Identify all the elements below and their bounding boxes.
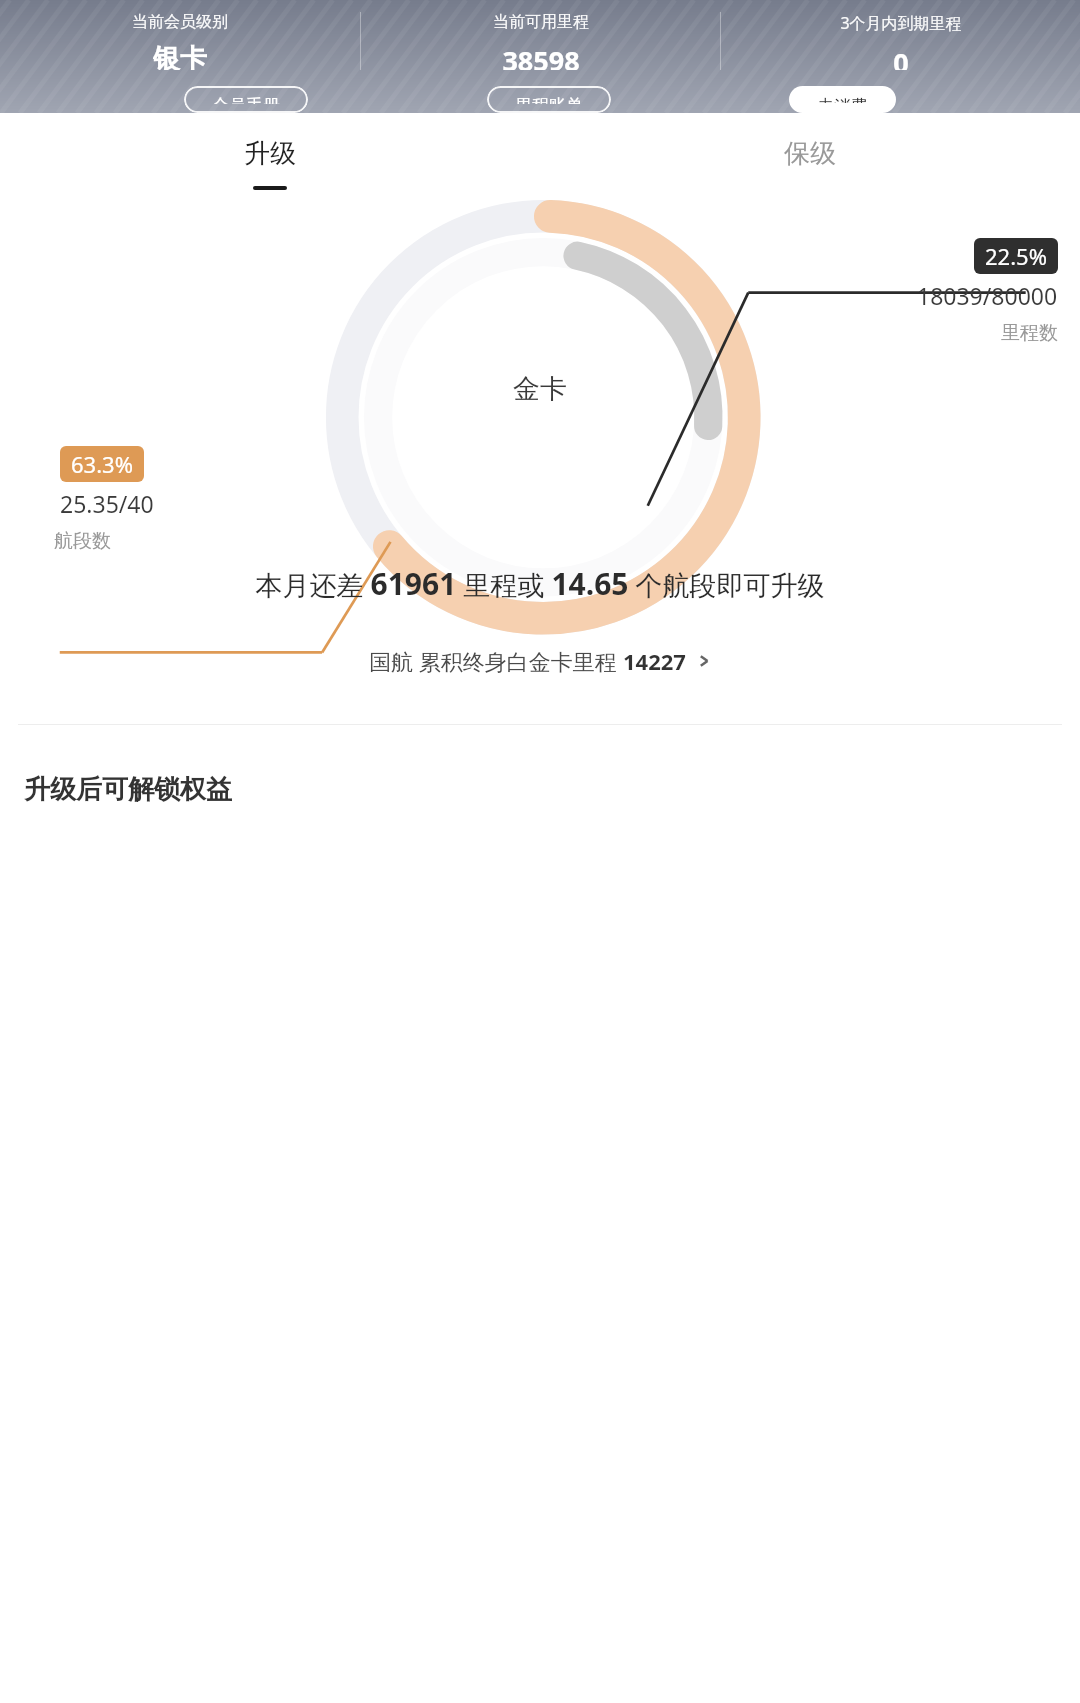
staticText: 0 <box>893 44 909 70</box>
staticText: 25.35/40 <box>60 488 154 519</box>
other: More <box>696 653 712 669</box>
button[interactable]: 保级 <box>744 131 876 176</box>
button[interactable]: 里程账单 <box>487 86 611 113</box>
staticText: 升级后可解锁权益 <box>24 773 232 806</box>
staticText: 航段数 <box>54 529 111 553</box>
staticText: 保级 <box>784 137 836 170</box>
staticText: 会员手册 <box>212 95 280 104</box>
staticText: 63.3% <box>71 449 133 479</box>
staticText: 银卡 <box>153 42 207 70</box>
staticText: 里程账单 <box>515 95 583 104</box>
staticText: 去消费 <box>817 96 868 103</box>
staticText: 当前会员级别 <box>132 12 228 32</box>
button[interactable]: 会员手册 <box>184 86 308 113</box>
staticText: 22.5% <box>985 241 1047 271</box>
staticText: 38598 <box>502 42 580 70</box>
button[interactable]: 国航 累积终身白金卡里程 <box>353 638 728 684</box>
staticText: 当前可用里程 <box>493 12 589 32</box>
button[interactable]: 去消费 <box>789 86 896 113</box>
staticText: 升级 <box>244 137 296 170</box>
staticText: 3个月内到期里程 <box>840 12 962 34</box>
staticText: 金卡 <box>513 372 567 406</box>
staticText: 里程数 <box>1001 321 1058 345</box>
staticText: 本月还差 61961 里程或 14.65 个航段即可升级 <box>22 563 1058 604</box>
button[interactable]: 升级 <box>204 131 336 196</box>
staticText: 国航 累积终身白金卡里程 <box>369 646 623 676</box>
staticText: 14227 <box>623 646 686 676</box>
staticText: 18039/80000 <box>917 280 1058 311</box>
